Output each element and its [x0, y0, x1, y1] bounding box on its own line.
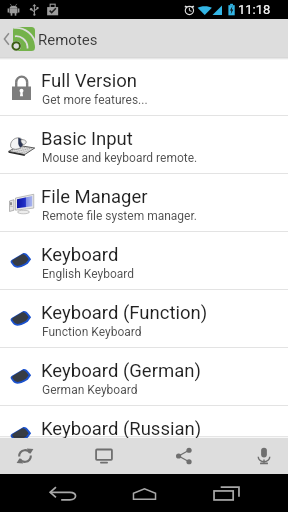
button[interactable]: Up [0, 19, 288, 57]
staticText: Keyboard (German) [41, 360, 201, 382]
staticText: Remotes [38, 31, 98, 49]
staticText: Mouse and keyboard remote. [42, 151, 198, 165]
button[interactable]: Keyboard (Function) [0, 290, 288, 348]
button[interactable]: Keyboard (German) [0, 348, 288, 406]
button[interactable]: Home [104, 474, 184, 512]
staticText: Get more features... [42, 93, 148, 107]
staticText: Function Keyboard [42, 325, 142, 339]
staticText: Basic Input [41, 128, 133, 150]
button[interactable]: Display [68, 438, 140, 474]
button[interactable]: File Manager [0, 174, 288, 232]
button[interactable]: Refresh [0, 438, 61, 474]
button[interactable]: Voice [228, 438, 288, 474]
button[interactable]: Recents [186, 474, 266, 512]
staticText: Russian Keyboard [42, 441, 138, 455]
staticText: 11:18 [238, 2, 271, 17]
button[interactable]: Back [23, 474, 103, 512]
button[interactable]: Keyboard [0, 232, 288, 290]
other: Up [4, 33, 9, 45]
button[interactable]: Keyboard (Russian) [0, 406, 288, 464]
staticText: English Keyboard [42, 267, 134, 281]
staticText: Keyboard (Function) [41, 302, 208, 324]
button[interactable]: Share [148, 438, 220, 474]
staticText: Keyboard (Russian) [41, 418, 202, 440]
staticText: Remote file system manager. [42, 209, 197, 223]
staticText: German Keyboard [42, 383, 138, 397]
button[interactable]: Basic Input [0, 116, 288, 174]
staticText: Full Version [41, 70, 138, 92]
staticText: Keyboard [41, 244, 119, 266]
button[interactable]: Full Version [0, 58, 288, 116]
staticText: File Manager [41, 186, 148, 208]
